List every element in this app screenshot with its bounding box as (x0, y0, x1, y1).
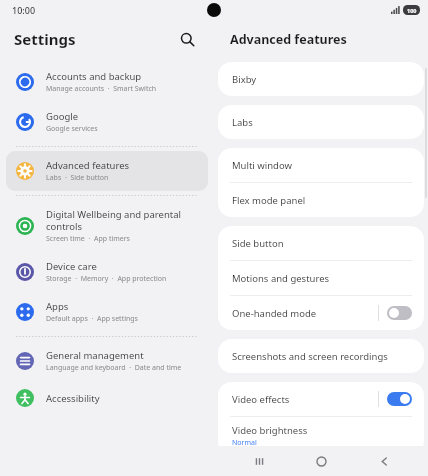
button[interactable]: Accounts and backup (6, 62, 208, 102)
staticText: Screenshots and screen recordings (232, 350, 388, 363)
staticText: Side button (232, 237, 284, 250)
staticText: Advanced features (46, 159, 130, 172)
button[interactable]: Advanced features (6, 151, 208, 191)
staticText: Accounts and backup (46, 70, 142, 83)
staticText: Google services (46, 124, 98, 134)
button[interactable]: General management (6, 341, 208, 381)
staticText: Motions and gestures (232, 272, 330, 285)
staticText: Device care (46, 260, 97, 273)
staticText: Video effects (232, 393, 290, 406)
staticText: Settings (14, 29, 76, 49)
staticText: 100 (407, 7, 417, 14)
button[interactable]: Video effects (218, 382, 424, 416)
staticText: One-handed mode (232, 307, 317, 320)
button[interactable]: Multi window (218, 148, 424, 182)
button[interactable]: One-handed mode (218, 296, 424, 330)
button[interactable]: Bixby (218, 62, 424, 96)
staticText: Digital Wellbeing and parental controls (46, 208, 200, 233)
button[interactable]: Back (366, 446, 402, 476)
button[interactable]: Google (6, 102, 208, 142)
staticText: Multi window (232, 159, 292, 172)
staticText: Normal (232, 438, 257, 448)
button[interactable]: Digital Wellbeing and parental controls (6, 200, 208, 252)
staticText: Flex mode panel (232, 194, 306, 207)
button[interactable]: Home (303, 446, 339, 476)
button[interactable]: Side button (218, 226, 424, 260)
button[interactable]: Motions and gestures (218, 261, 424, 295)
staticText: Google (46, 110, 79, 123)
staticText: Advanced features (230, 31, 347, 48)
staticText: Bixby (232, 73, 257, 86)
staticText: Video brightness (232, 424, 308, 437)
button[interactable]: Toggle off (387, 306, 412, 320)
button[interactable]: Labs (218, 105, 424, 139)
staticText: Manage accounts · Smart Switch (46, 84, 157, 94)
button[interactable]: Recents (241, 446, 277, 476)
staticText: Apps (46, 300, 69, 313)
button[interactable]: Accessibility (6, 381, 208, 415)
staticText: Labs (232, 116, 253, 129)
button[interactable]: Device care (6, 252, 208, 292)
button[interactable]: Flex mode panel (218, 183, 424, 217)
staticText: Labs · Side button (46, 173, 109, 183)
staticText: Default apps · App settings (46, 314, 138, 324)
staticText: Accessibility (46, 392, 100, 405)
button[interactable]: Screenshots and screen recordings (218, 339, 424, 373)
staticText: Screen time · App timers (46, 234, 130, 244)
button[interactable]: Search (174, 26, 200, 52)
staticText: Storage · Memory · App protection (46, 274, 167, 284)
button[interactable]: Video brightness (218, 417, 424, 455)
staticText: Language and keyboard · Date and time (46, 363, 182, 373)
staticText: 10:00 (12, 4, 36, 16)
button[interactable]: Toggle on (387, 392, 412, 406)
staticText: General management (46, 349, 144, 362)
button[interactable]: Apps (6, 292, 208, 332)
